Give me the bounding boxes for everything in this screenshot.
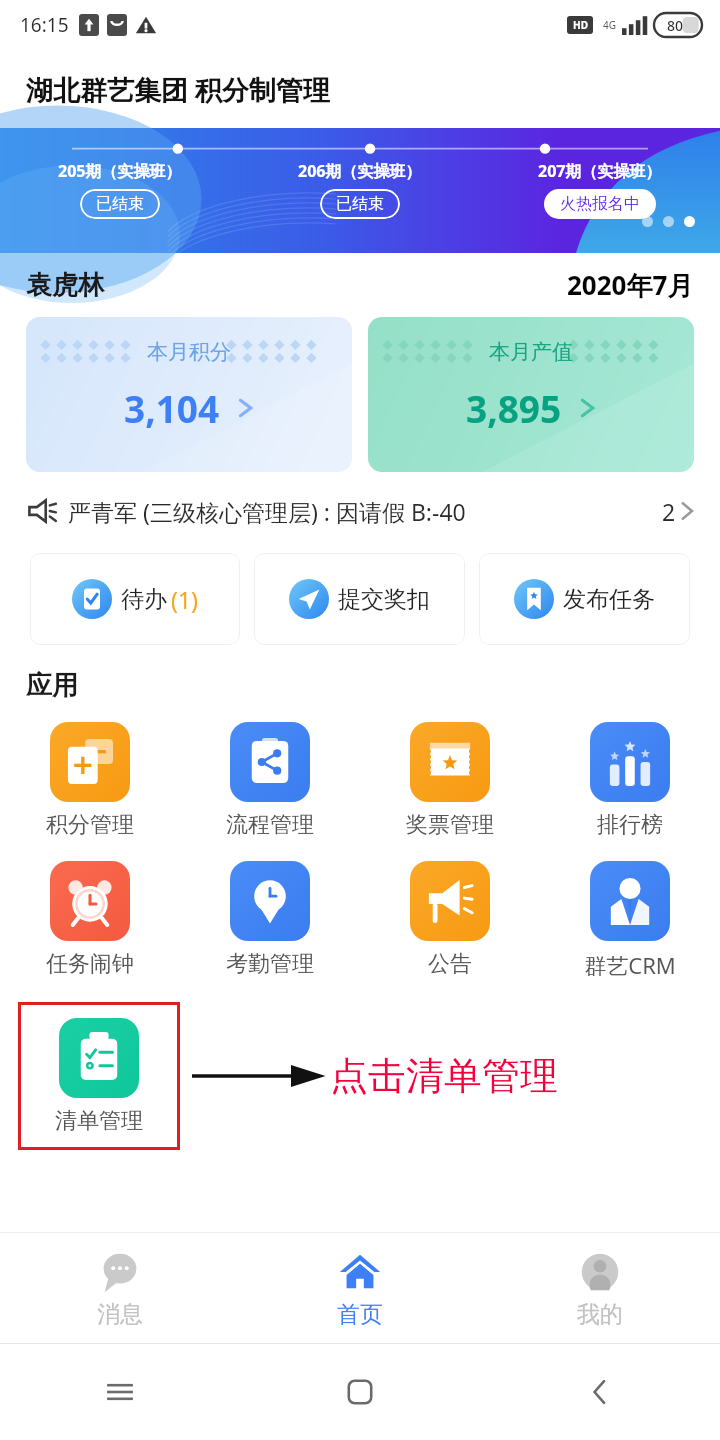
button[interactable]: 已结束 [80, 189, 160, 219]
button[interactable]: 本月产值 [368, 317, 694, 472]
staticText: 已结束 [336, 194, 384, 214]
button[interactable]: 排行榜 [540, 716, 720, 845]
button[interactable]: 群艺CRM [540, 855, 720, 986]
staticText: 205期（实操班） [58, 160, 182, 182]
staticText: 袁虎林 [26, 269, 104, 302]
staticText: 207期（实操班） [538, 160, 662, 182]
button[interactable]: 本月积分 [26, 317, 352, 472]
staticText: 群艺CRM [584, 950, 676, 980]
button[interactable]: 消息 [0, 1233, 240, 1343]
staticText: 3,895 [466, 383, 562, 433]
staticText: 任务闹钟 [46, 950, 134, 978]
staticText: 2 [662, 496, 676, 527]
staticText: 奖票管理 [406, 811, 494, 839]
button[interactable]: 清单管理 [55, 1012, 143, 1141]
staticText: 发布任务 [563, 585, 655, 614]
button[interactable]: 我的 [480, 1233, 720, 1343]
button[interactable]: 待办 [30, 553, 240, 645]
staticText: 本月产值 [489, 339, 573, 365]
staticText: 严青军 (三级核心管理层) : 因请假 B:-40 [68, 496, 466, 527]
staticText: 考勤管理 [226, 950, 314, 978]
staticText: 4G [603, 18, 616, 32]
staticText: 积分管理 [46, 811, 134, 839]
button[interactable]: Recent apps [103, 1375, 137, 1409]
button[interactable]: 火热报名中 [544, 189, 656, 219]
staticText: 消息 [97, 1300, 143, 1329]
staticText: 已结束 [96, 194, 144, 214]
button[interactable]: 流程管理 [180, 716, 360, 845]
staticText: HD [573, 18, 588, 32]
button[interactable]: Back [583, 1375, 617, 1409]
staticText: 我的 [577, 1300, 623, 1329]
button[interactable]: 发布任务 [479, 553, 690, 645]
button[interactable]: 首页 [240, 1233, 480, 1343]
button[interactable]: 考勤管理 [180, 855, 360, 984]
staticText: 火热报名中 [560, 194, 640, 214]
staticText: 16:15 [20, 12, 69, 38]
staticText: 80 [667, 16, 684, 35]
button[interactable]: 清单管理 [18, 1002, 180, 1150]
staticText: 清单管理 [55, 1107, 143, 1135]
staticText: (1) [171, 584, 198, 615]
button[interactable]: 公告 [360, 855, 540, 984]
button[interactable]: 已结束 [320, 189, 400, 219]
staticText: 流程管理 [226, 811, 314, 839]
staticText: 湖北群艺集团 积分制管理 [26, 71, 331, 108]
staticText: 应用 [26, 669, 78, 702]
button[interactable]: 提交奖扣 [254, 553, 465, 645]
staticText: 待办 [121, 585, 167, 614]
staticText: 3,104 [124, 383, 220, 433]
staticText: 2020年7月 [567, 267, 694, 303]
button[interactable]: Home [343, 1375, 377, 1409]
staticText: 206期（实操班） [298, 160, 422, 182]
staticText: 公告 [428, 950, 472, 978]
button[interactable]: 奖票管理 [360, 716, 540, 845]
button[interactable]: 任务闹钟 [0, 855, 180, 984]
button[interactable]: 积分管理 [0, 716, 180, 845]
button[interactable]: 205期（实操班） [0, 128, 720, 253]
staticText: 首页 [337, 1300, 383, 1329]
staticText: 点击清单管理 [330, 1052, 558, 1100]
staticText: 提交奖扣 [338, 585, 430, 614]
staticText: 排行榜 [597, 811, 663, 839]
button[interactable]: 严青军 (三级核心管理层) : 因请假 B:-40 [0, 486, 720, 536]
staticText: 本月积分 [147, 339, 231, 365]
